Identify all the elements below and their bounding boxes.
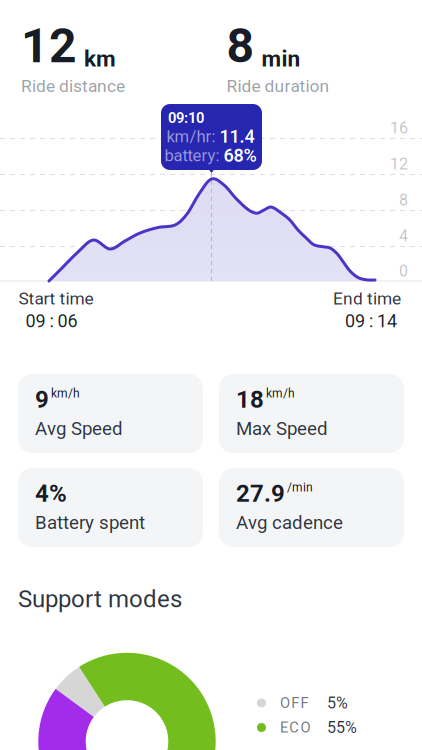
staticText: 11.4: [219, 126, 254, 147]
button[interactable]: 18: [219, 374, 404, 453]
staticText: Battery spent: [35, 512, 145, 533]
staticText: 18: [236, 385, 264, 413]
staticText: 9: [35, 385, 49, 413]
staticText: 12: [390, 155, 408, 173]
staticText: 55%: [327, 718, 357, 737]
staticText: min: [261, 45, 300, 72]
staticText: 16: [390, 119, 408, 137]
button[interactable]: 9: [18, 374, 203, 453]
staticText: 68%: [223, 145, 256, 166]
staticText: battery:: [164, 146, 219, 165]
button[interactable]: 4%: [18, 468, 203, 547]
staticText: /min: [287, 480, 313, 494]
staticText: Avg cadence: [236, 512, 343, 533]
staticText: 12: [21, 18, 77, 74]
button[interactable]: 27.9: [219, 468, 404, 547]
staticText: km: [84, 45, 116, 72]
staticText: 8: [399, 191, 408, 209]
staticText: 4%: [35, 479, 67, 507]
staticText: km/hr:: [166, 127, 215, 146]
staticText: 09 : 06: [25, 311, 77, 332]
staticText: 4: [399, 227, 408, 245]
staticText: Avg Speed: [35, 418, 123, 439]
staticText: 0: [399, 262, 408, 280]
staticText: End time: [333, 288, 401, 309]
staticText: OFF: [280, 694, 309, 712]
staticText: Max Speed: [236, 418, 328, 439]
staticText: Support modes: [18, 585, 182, 613]
staticText: ECO: [280, 719, 311, 736]
staticText: Ride distance: [21, 76, 125, 96]
staticText: 5%: [327, 694, 348, 712]
staticText: Start time: [18, 288, 93, 309]
staticText: km/h: [51, 386, 80, 400]
staticText: 8: [226, 18, 254, 74]
staticText: km/h: [266, 386, 295, 400]
staticText: 27.9: [236, 479, 285, 507]
staticText: 09:10: [168, 109, 204, 127]
staticText: 09 : 14: [345, 311, 397, 332]
staticText: Ride duration: [226, 76, 329, 96]
